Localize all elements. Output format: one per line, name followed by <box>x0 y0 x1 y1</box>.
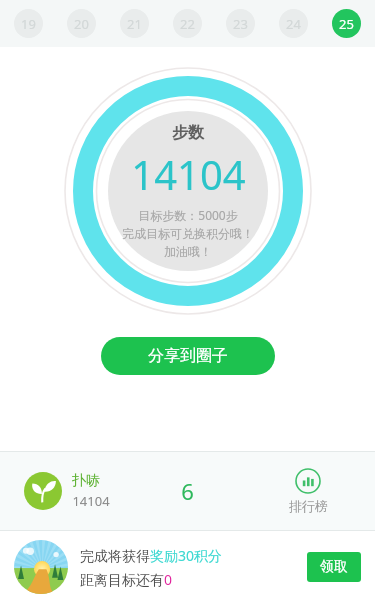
button[interactable]: 分享到圈子 <box>101 337 275 375</box>
button[interactable]: 23 <box>226 9 255 38</box>
staticText: 扑哧 <box>72 472 100 490</box>
staticText: 19 <box>21 15 36 33</box>
staticText: 24 <box>286 15 301 33</box>
button[interactable]: 25 <box>332 9 361 38</box>
staticText: 分享到圈子 <box>148 346 228 366</box>
button[interactable]: 24 <box>279 9 308 38</box>
staticText: 21 <box>127 15 142 33</box>
staticText: 加油哦！ <box>164 244 212 259</box>
button[interactable]: 21 <box>120 9 149 38</box>
staticText: 领取 <box>320 558 348 576</box>
staticText: 步数 <box>172 123 204 143</box>
button[interactable]: 20 <box>67 9 96 38</box>
staticText: 22 <box>180 15 195 33</box>
button[interactable]: 19 <box>14 9 43 38</box>
staticText: 20 <box>74 15 89 33</box>
staticText: 25 <box>339 15 354 33</box>
staticText: 23 <box>233 15 248 33</box>
staticText: 排行榜 <box>289 498 328 514</box>
button[interactable]: 领取 <box>307 552 361 582</box>
staticText: 目标步数：5000步 <box>138 207 238 223</box>
staticText: 6 <box>181 476 194 506</box>
button[interactable]: 扑哧 <box>24 472 134 510</box>
staticText: 14104 <box>72 492 110 510</box>
button[interactable]: 排行榜 <box>241 468 375 514</box>
staticText: 距离目标还有0 <box>80 570 173 589</box>
staticText: 完成目标可兑换积分哦！ <box>122 226 254 241</box>
staticText: 完成将获得奖励30积分 <box>80 546 223 565</box>
button[interactable]: 22 <box>173 9 202 38</box>
staticText: 14104 <box>131 147 246 201</box>
